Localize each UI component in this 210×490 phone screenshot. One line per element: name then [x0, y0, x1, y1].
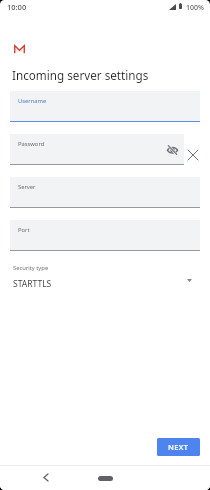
button[interactable]: Back [38, 470, 54, 486]
staticText: Server [18, 183, 36, 191]
staticText: Password [18, 140, 45, 148]
button[interactable]: Security type [0, 262, 210, 290]
button[interactable]: Password [10, 134, 184, 165]
button[interactable]: Show password [166, 144, 178, 156]
staticText: 10:00 [7, 2, 27, 12]
staticText: Port [18, 226, 30, 234]
button[interactable]: Clear [187, 149, 199, 161]
staticText: STARTTLS [13, 278, 52, 290]
staticText: 100% [186, 3, 204, 13]
button[interactable]: NEXT [157, 438, 200, 456]
button[interactable]: Port [10, 220, 200, 251]
staticText: Incoming server settings [12, 67, 149, 83]
button[interactable]: Username [10, 91, 200, 122]
staticText: NEXT [168, 442, 189, 452]
staticText: Security type [13, 264, 49, 272]
staticText: Username [18, 97, 47, 105]
button[interactable]: Server [10, 177, 200, 208]
button[interactable]: Home [92, 471, 118, 485]
